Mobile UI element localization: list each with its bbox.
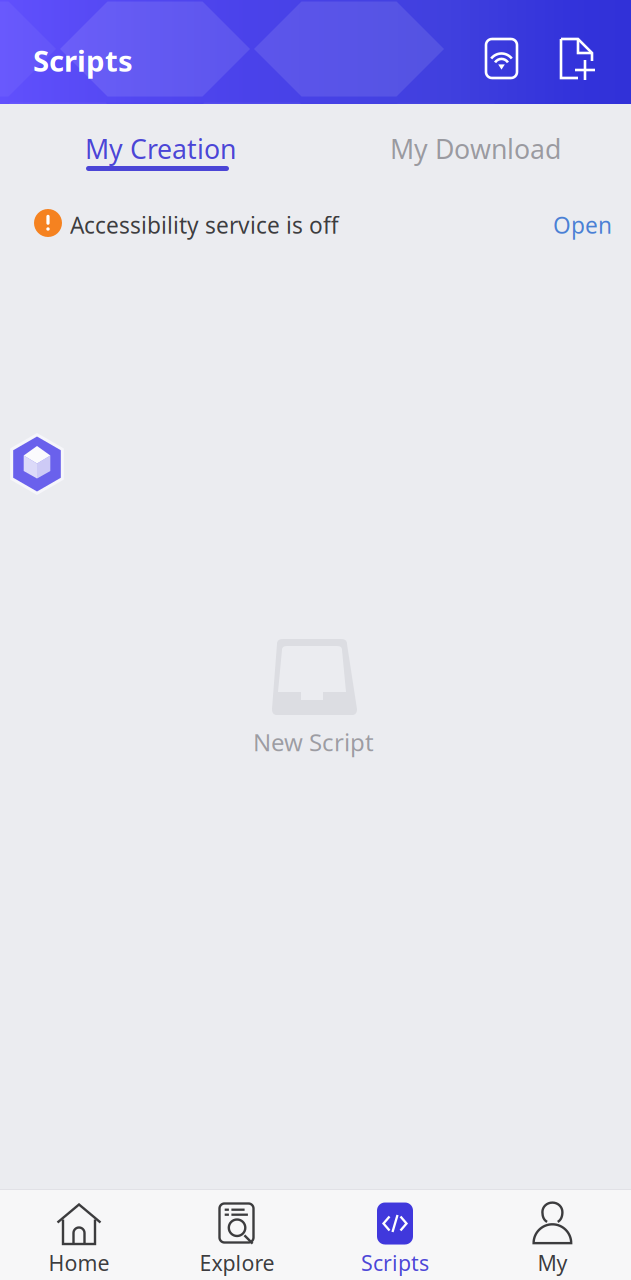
staticText: My Creation xyxy=(85,131,236,166)
button[interactable]: Home xyxy=(0,1189,158,1280)
button[interactable]: My xyxy=(474,1189,631,1280)
button[interactable]: Explore xyxy=(158,1189,316,1280)
button[interactable]: New script xyxy=(549,31,603,85)
staticText: Accessibility service is off xyxy=(70,210,339,240)
staticText: My xyxy=(537,1248,567,1277)
staticText: Explore xyxy=(199,1248,274,1277)
staticText: My Download xyxy=(390,131,561,166)
button[interactable]: My Creation xyxy=(0,104,315,188)
staticText: Home xyxy=(48,1248,109,1277)
button[interactable]: Scripts xyxy=(316,1189,474,1280)
button[interactable]: Open xyxy=(545,202,620,248)
staticText: Open xyxy=(553,210,612,240)
staticText: Scripts xyxy=(361,1248,429,1277)
button[interactable]: My Download xyxy=(315,104,631,188)
button[interactable]: Connect device xyxy=(474,31,528,85)
staticText: Scripts xyxy=(33,41,133,80)
staticText: New Script xyxy=(253,726,374,758)
